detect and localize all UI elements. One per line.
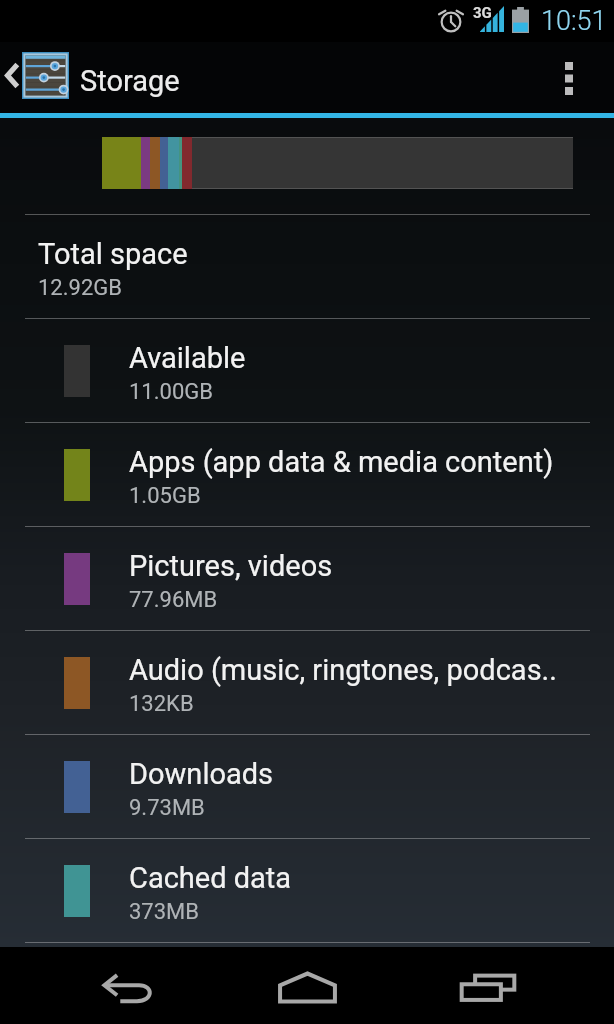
staticText: Pictures, videos [129, 549, 333, 583]
staticText: Apps (app data & media content) [129, 445, 554, 479]
button[interactable]: Home [245, 947, 369, 1024]
staticText: 77.96MB [129, 587, 218, 613]
staticText: Total space [38, 237, 188, 271]
button[interactable]: Back [66, 947, 190, 1024]
staticText: 373MB [129, 899, 200, 925]
button[interactable]: Audio (music, ringtones, podcas.. [0, 631, 614, 734]
staticText: 11.00GB [129, 379, 213, 405]
button[interactable]: Available [0, 319, 614, 422]
button[interactable]: Pictures, videos [0, 527, 614, 630]
button[interactable]: Total space [0, 215, 614, 318]
staticText: Available [129, 341, 246, 375]
staticText: 1.05GB [129, 483, 201, 509]
staticText: 12.92GB [38, 275, 122, 301]
staticText: 3G [473, 4, 492, 22]
staticText: Cached data [129, 861, 292, 895]
staticText: Storage [80, 64, 180, 98]
staticText: 132KB [129, 691, 194, 717]
button[interactable]: Recent apps [426, 947, 550, 1024]
staticText: 9.73MB [129, 795, 205, 821]
button[interactable]: More options [545, 42, 614, 113]
button[interactable]: Cached data [0, 839, 614, 942]
staticText: 10:51 [541, 5, 607, 37]
button[interactable]: Downloads [0, 735, 614, 838]
button[interactable]: Navigate up [0, 42, 72, 113]
staticText: Downloads [129, 757, 274, 791]
staticText: Audio (music, ringtones, podcas.. [129, 653, 557, 687]
button[interactable]: Apps (app data & media content) [0, 423, 614, 526]
